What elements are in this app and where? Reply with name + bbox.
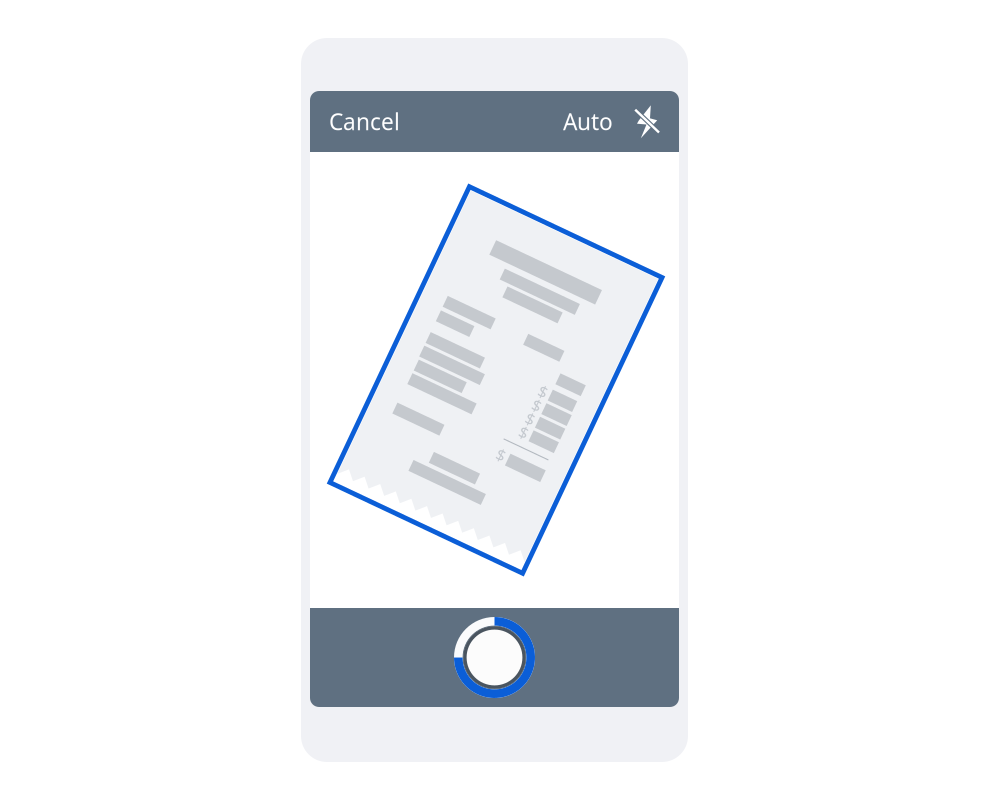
staticText: Auto: [563, 106, 613, 136]
staticText: $: [528, 435, 537, 456]
staticText: Cancel: [329, 106, 400, 136]
staticText: $: [539, 375, 548, 396]
staticText: $: [539, 390, 548, 411]
button[interactable]: Cancel: [329, 106, 400, 136]
staticText: $: [539, 405, 548, 426]
button[interactable]: Capture: [453, 616, 535, 698]
button[interactable]: Auto: [563, 106, 613, 136]
button[interactable]: Flash off: [637, 103, 659, 139]
